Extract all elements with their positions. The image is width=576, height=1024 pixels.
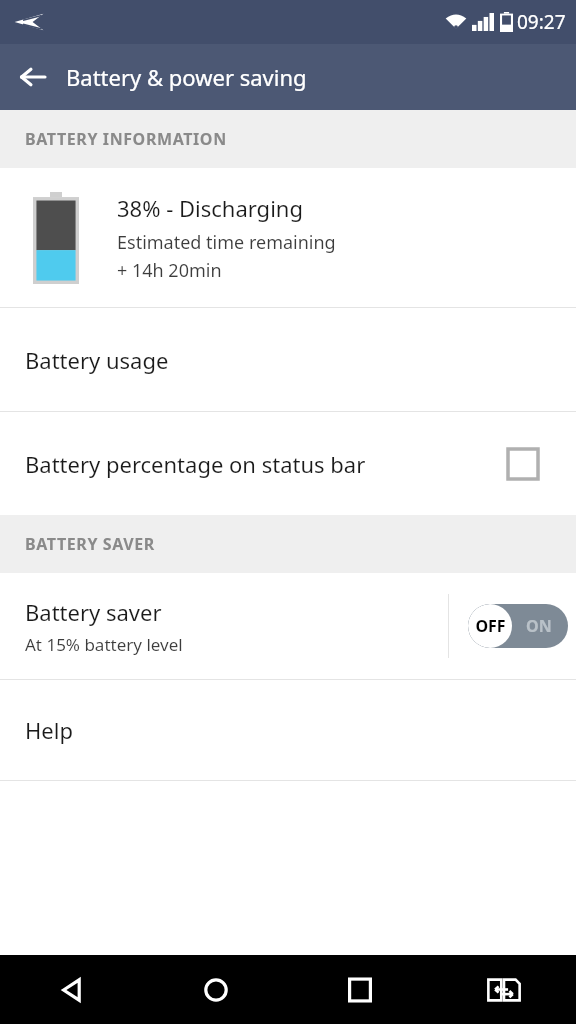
staticText: 09:27 <box>517 9 566 35</box>
button[interactable]: Recent apps <box>288 955 432 1024</box>
button[interactable]: Dual window <box>432 955 576 1024</box>
staticText: Battery saver <box>25 597 162 627</box>
button[interactable]: Back <box>0 44 66 110</box>
staticText: Battery percentage on status bar <box>25 449 508 479</box>
staticText: OFF <box>475 615 506 637</box>
button[interactable]: Help <box>0 680 576 780</box>
staticText: Estimated time remaining <box>117 230 336 255</box>
staticText: BATTERY INFORMATION <box>25 128 227 150</box>
staticText: 38% - Discharging <box>117 193 303 223</box>
staticText: Help <box>25 715 73 745</box>
staticText: At 15% battery level <box>25 633 183 656</box>
button[interactable]: Home <box>144 955 288 1024</box>
button[interactable]: 38% - Discharging <box>0 168 576 307</box>
button[interactable]: Back <box>0 955 144 1024</box>
staticText: Battery & power saving <box>66 62 307 92</box>
staticText: ON <box>526 615 552 637</box>
button[interactable]: Battery saver <box>0 573 448 679</box>
staticText: BATTERY SAVER <box>25 533 155 555</box>
staticText: Battery usage <box>25 345 169 375</box>
button[interactable]: Battery percentage on status bar <box>0 412 576 515</box>
button[interactable]: Battery saver toggle, off <box>468 604 568 648</box>
staticText: + 14h 20min <box>117 258 222 283</box>
button[interactable]: Battery usage <box>0 308 576 411</box>
